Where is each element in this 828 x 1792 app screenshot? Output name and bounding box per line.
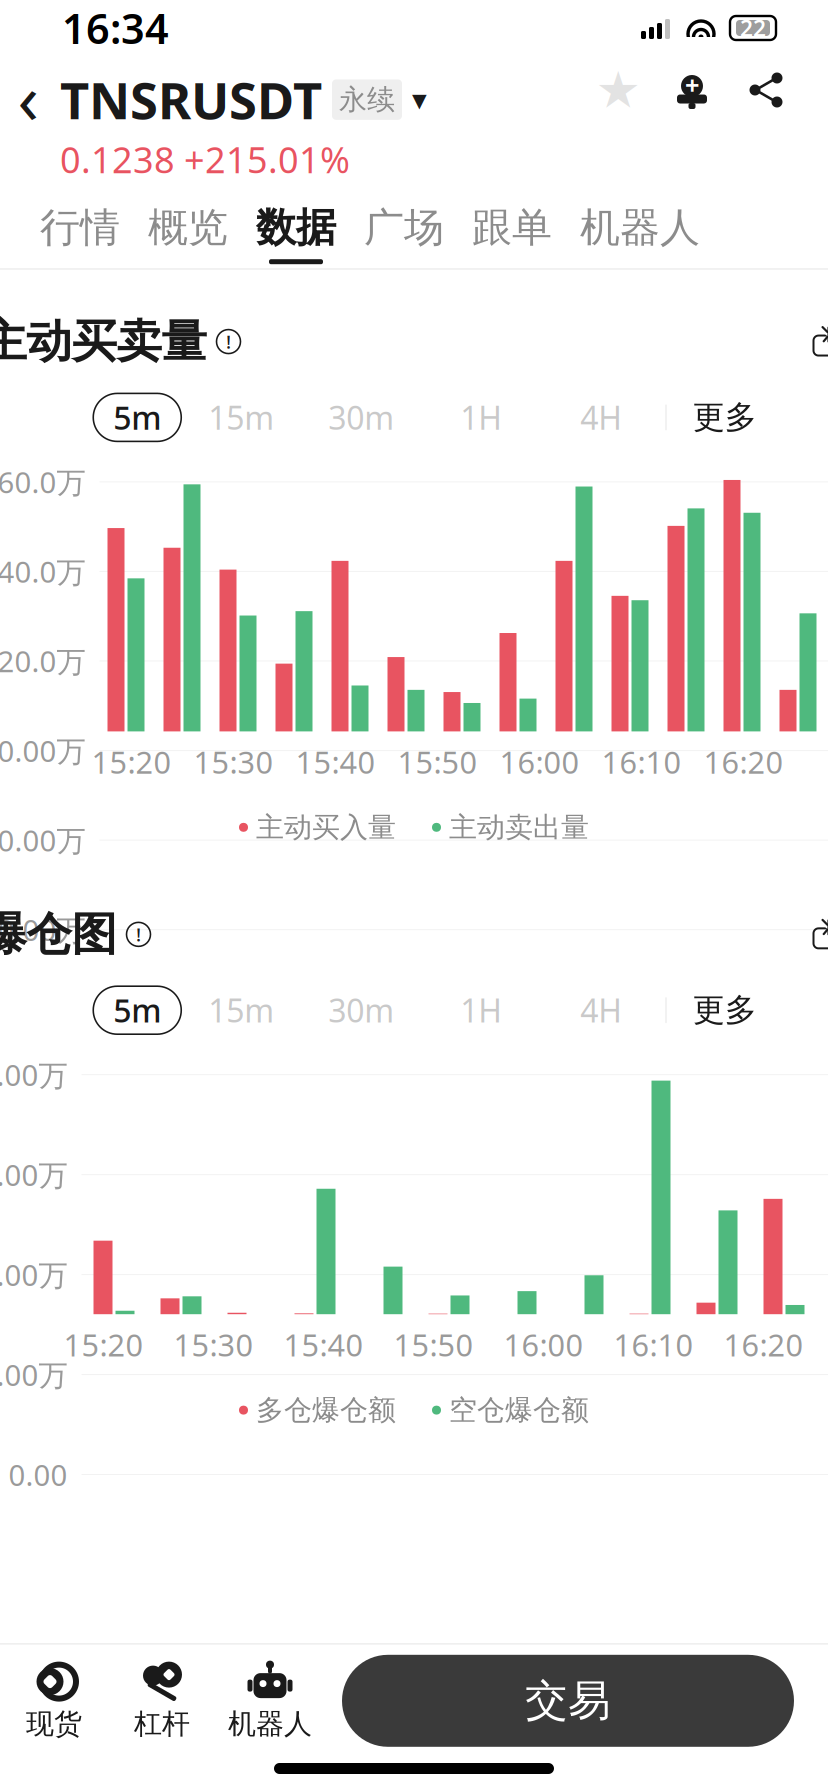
staticText: 16:10	[601, 741, 681, 782]
staticText: 15:50	[397, 741, 477, 782]
staticText: 4H	[580, 396, 622, 439]
staticText: 15:40	[283, 1324, 363, 1365]
staticText: 6.00万	[0, 1155, 67, 1194]
button[interactable]: 更多	[667, 986, 757, 1034]
button[interactable]: 1H	[421, 986, 541, 1034]
button[interactable]: 4H	[541, 393, 661, 441]
staticText: 空仓爆仓额	[449, 1393, 589, 1427]
button[interactable]: TNSRUSDT	[60, 66, 427, 133]
button[interactable]: Share	[744, 66, 788, 114]
staticText: 15m	[208, 396, 274, 439]
staticText: 15:40	[295, 741, 375, 782]
staticText: 交易	[525, 1675, 611, 1727]
staticText: 100.00万	[0, 731, 85, 770]
staticText: 现货	[26, 1707, 82, 1741]
staticText: ▾	[412, 83, 427, 116]
staticText: 80.00万	[0, 821, 85, 860]
staticText: 16:34	[62, 1, 169, 55]
staticText: 15m	[208, 989, 274, 1031]
staticText: 爆仓图	[0, 906, 116, 962]
staticText: 15:50	[393, 1324, 473, 1365]
staticText: 5m	[113, 989, 161, 1031]
staticText: 杠杆	[134, 1707, 190, 1741]
staticText: 160.0万	[0, 462, 85, 501]
staticText: 0.1238 +215.01%	[60, 135, 350, 183]
staticText: 主动买卖量	[0, 314, 206, 369]
button[interactable]: Favourite	[596, 66, 640, 114]
staticText: 16:00	[499, 741, 579, 782]
staticText: 机器人	[580, 203, 700, 252]
staticText: ‹	[17, 51, 38, 143]
button[interactable]: 30m	[301, 393, 421, 441]
button[interactable]: Back	[0, 66, 56, 128]
staticText: 概览	[148, 203, 228, 252]
button[interactable]: 概览	[134, 203, 242, 268]
staticText: 4H	[580, 989, 622, 1031]
button[interactable]: 交易	[342, 1655, 794, 1747]
staticText: TNSRUSDT	[60, 66, 322, 133]
staticText: ★	[595, 61, 640, 119]
staticText: !	[226, 329, 231, 354]
staticText: 30m	[328, 989, 394, 1031]
button[interactable]: 机器人	[566, 203, 714, 268]
staticText: 16:00	[503, 1324, 583, 1365]
staticText: 5m	[113, 396, 161, 439]
staticText: !	[136, 922, 141, 947]
staticText: 22	[740, 13, 766, 43]
button[interactable]: 行情	[26, 203, 134, 268]
button[interactable]: Alerts	[670, 66, 714, 114]
staticText: 主动卖出量	[449, 810, 589, 844]
staticText: 1H	[460, 396, 502, 439]
button[interactable]: 跟单	[458, 203, 566, 268]
staticText: 16:10	[613, 1324, 693, 1365]
staticText: 15:20	[63, 1324, 143, 1365]
button[interactable]: Expand chart	[802, 912, 828, 956]
staticText: 2.00万	[0, 1355, 67, 1394]
button[interactable]: 现货	[0, 1655, 108, 1747]
staticText: 行情	[40, 203, 120, 252]
button[interactable]: Expand chart	[802, 320, 828, 364]
staticText: 数据	[256, 203, 336, 252]
staticText: 广场	[364, 203, 444, 252]
staticText: 主动买入量	[256, 810, 396, 844]
button[interactable]: 更多	[667, 393, 757, 441]
staticText: +	[685, 68, 699, 102]
button[interactable]: 15m	[181, 393, 301, 441]
staticText: 永续	[339, 82, 395, 117]
button[interactable]: 5m	[93, 986, 181, 1034]
staticText: 机器人	[228, 1707, 312, 1741]
staticText: 多仓爆仓额	[256, 1393, 396, 1427]
staticText: 30m	[328, 396, 394, 439]
button[interactable]: 1H	[421, 393, 541, 441]
button[interactable]: 30m	[301, 986, 421, 1034]
staticText: 15:20	[91, 741, 171, 782]
button[interactable]: 机器人	[216, 1655, 324, 1747]
staticText: 60.00万	[0, 910, 85, 949]
button[interactable]: 5m	[93, 393, 181, 441]
button[interactable]: 15m	[181, 986, 301, 1034]
staticText: 16:20	[723, 1324, 803, 1365]
staticText: 1H	[460, 989, 502, 1031]
staticText: 更多	[693, 990, 757, 1030]
staticText: 0.00	[8, 1455, 67, 1494]
button[interactable]: 数据	[242, 203, 350, 268]
button[interactable]: 广场	[350, 203, 458, 268]
button[interactable]: 杠杆	[108, 1655, 216, 1747]
staticText: 15:30	[173, 1324, 253, 1365]
staticText: 140.0万	[0, 552, 85, 591]
staticText: 15:30	[193, 741, 273, 782]
staticText: 8.00万	[0, 1055, 67, 1094]
button[interactable]: 4H	[541, 986, 661, 1034]
staticText: 16:20	[703, 741, 783, 782]
staticText: 跟单	[472, 203, 552, 252]
staticText: 更多	[693, 398, 757, 437]
staticText: 120.0万	[0, 641, 85, 680]
staticText: 4.00万	[0, 1255, 67, 1294]
